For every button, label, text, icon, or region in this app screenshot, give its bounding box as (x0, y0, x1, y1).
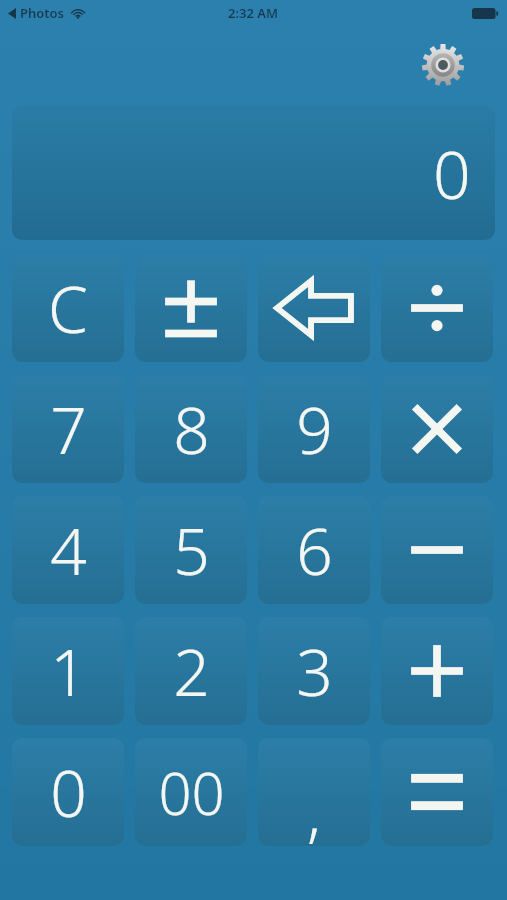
button[interactable]: Backspace (258, 254, 370, 362)
staticText: 4 (50, 507, 87, 594)
button[interactable]: 1 (12, 617, 124, 725)
staticText: 1 (50, 628, 87, 715)
button[interactable]: Minus (381, 496, 493, 604)
staticText: 00 (158, 753, 225, 832)
button[interactable]: , (258, 738, 370, 846)
button[interactable]: Settings (420, 42, 466, 88)
staticText: Photos (20, 4, 65, 22)
staticText: 0 (433, 128, 471, 218)
button[interactable]: 6 (258, 496, 370, 604)
button[interactable]: 2 (135, 617, 247, 725)
button[interactable]: Multiply (381, 375, 493, 483)
button[interactable]: 9 (258, 375, 370, 483)
button[interactable]: 00 (135, 738, 247, 846)
button[interactable]: Divide (381, 254, 493, 362)
button[interactable]: Plus minus (135, 254, 247, 362)
staticText: 6 (296, 507, 333, 594)
staticText: C (48, 265, 88, 352)
button[interactable]: 0 (12, 738, 124, 846)
staticText: 0 (50, 749, 87, 836)
staticText: , (307, 770, 321, 846)
button[interactable]: 0 (12, 106, 495, 240)
button[interactable]: Equals (381, 738, 493, 846)
button[interactable]: C (12, 254, 124, 362)
staticText: 9 (296, 386, 333, 473)
button[interactable]: Plus (381, 617, 493, 725)
staticText: 3 (296, 628, 333, 715)
button[interactable]: 7 (12, 375, 124, 483)
staticText: 7 (50, 386, 87, 473)
staticText: 2 (173, 628, 210, 715)
button[interactable]: 3 (258, 617, 370, 725)
button[interactable]: 5 (135, 496, 247, 604)
button[interactable]: 4 (12, 496, 124, 604)
button[interactable]: 8 (135, 375, 247, 483)
staticText: 5 (173, 507, 210, 594)
staticText: 8 (173, 386, 210, 473)
staticText: 2:32 AM (228, 4, 279, 22)
